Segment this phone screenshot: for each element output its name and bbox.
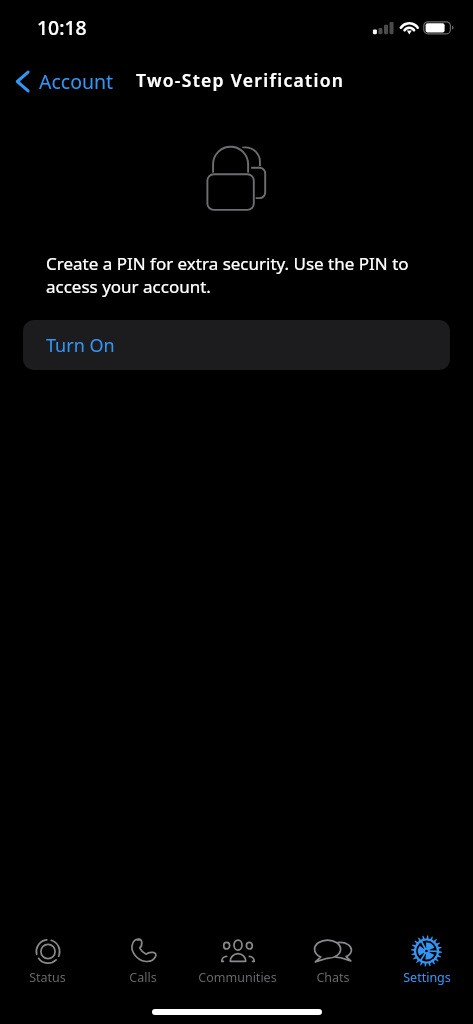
button[interactable]: Turn On [23,320,450,370]
button[interactable]: Status [0,934,95,989]
button[interactable]: Communities [190,934,285,989]
staticText: Calls [129,969,157,986]
staticText: Account [39,68,114,95]
button[interactable]: Settings [380,934,473,989]
button[interactable]: Chats [285,934,380,989]
staticText: Two-Step Verification [136,68,345,92]
staticText: 10:18 [37,14,87,40]
staticText: Status [29,969,66,986]
staticText: Settings [403,969,451,986]
button[interactable]: Back to Account [8,64,122,99]
button[interactable]: Calls [95,934,190,989]
staticText: Create a PIN for extra security. Use the… [46,252,418,298]
staticText: Communities [198,969,277,986]
staticText: Turn On [46,333,115,358]
staticText: Chats [316,969,350,986]
